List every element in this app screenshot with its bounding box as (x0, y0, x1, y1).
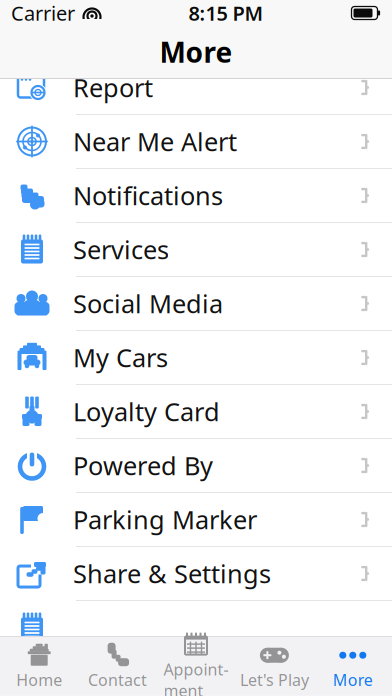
staticText: More (159, 33, 232, 71)
button[interactable]: Social Media (0, 277, 392, 331)
button[interactable]: Parking Marker (0, 493, 392, 547)
button[interactable]: Notifications (0, 169, 392, 223)
staticText: Report (73, 71, 153, 104)
button[interactable]: Share & Settings (0, 547, 392, 601)
staticText: Powered By (73, 449, 213, 482)
button[interactable]: Loyalty Card (0, 385, 392, 439)
button[interactable]: Let's Play (235, 637, 314, 696)
staticText: Carrier (11, 0, 75, 26)
staticText: Parking Marker (73, 503, 257, 536)
staticText: Contact (88, 669, 147, 690)
button[interactable]: Services (0, 223, 392, 277)
button[interactable]: Report (0, 61, 392, 115)
staticText: Appointment (163, 659, 228, 696)
staticText: Social Media (73, 287, 223, 320)
staticText: My Cars (73, 341, 168, 374)
button[interactable]: Near Me Alert (0, 115, 392, 169)
button[interactable]: More (314, 637, 392, 696)
staticText: Let's Play (240, 669, 309, 690)
staticText: Home (16, 669, 62, 690)
staticText: Near Me Alert (73, 125, 237, 158)
button[interactable]: Contact (78, 637, 157, 696)
button[interactable]: Powered By (0, 439, 392, 493)
staticText: Services (73, 233, 169, 266)
button[interactable]: Home (0, 637, 78, 696)
staticText: 8:15 PM (188, 0, 263, 26)
button[interactable]: My Cars (0, 331, 392, 385)
staticText: Share & Settings (73, 557, 271, 590)
staticText: Loyalty Card (73, 395, 220, 428)
staticText: Notifications (73, 179, 223, 212)
button[interactable]: Appointment (157, 637, 235, 696)
staticText: More (333, 669, 373, 690)
